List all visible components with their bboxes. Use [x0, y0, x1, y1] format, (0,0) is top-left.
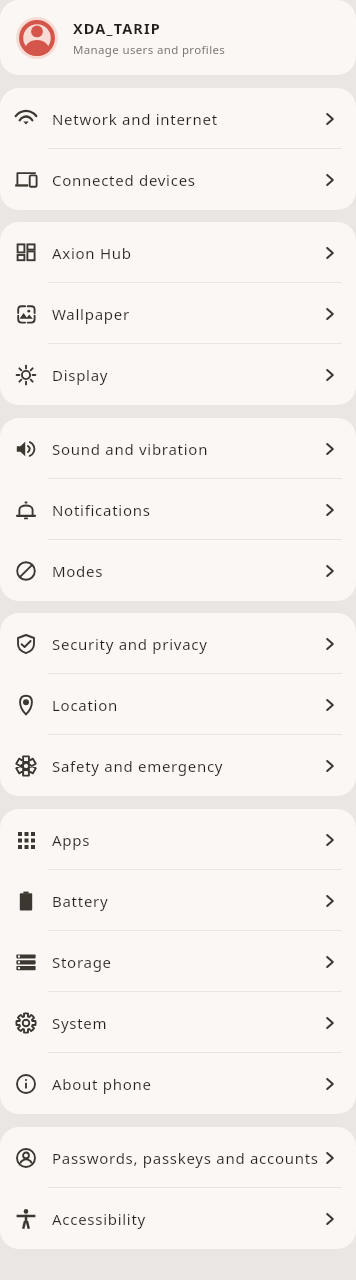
staticText: Location — [52, 695, 322, 715]
staticText: Apps — [52, 830, 322, 850]
staticText: Security and privacy — [52, 634, 322, 654]
button[interactable]: Passwords, passkeys and accounts — [0, 1127, 356, 1188]
button[interactable]: Connected devices — [0, 149, 356, 210]
button[interactable]: Security and privacy — [0, 613, 356, 674]
button[interactable]: Accessibility — [0, 1188, 356, 1249]
button[interactable]: About phone — [0, 1053, 356, 1114]
button[interactable]: System — [0, 992, 356, 1053]
staticText: Manage users and profiles — [73, 42, 226, 58]
staticText: Modes — [52, 561, 322, 581]
button[interactable]: Notifications — [0, 479, 356, 540]
button[interactable]: Display — [0, 344, 356, 405]
staticText: Passwords, passkeys and accounts — [52, 1148, 322, 1168]
staticText: Storage — [52, 952, 322, 972]
staticText: About phone — [52, 1074, 322, 1094]
staticText: Network and internet — [52, 109, 322, 129]
button[interactable]: XDA_TARIP — [0, 0, 356, 75]
staticText: XDA_TARIP — [73, 18, 161, 38]
staticText: Axion Hub — [52, 243, 322, 263]
button[interactable]: Axion Hub — [0, 222, 356, 283]
button[interactable]: Network and internet — [0, 88, 356, 149]
button[interactable]: Safety and emergency — [0, 735, 356, 796]
staticText: Display — [52, 365, 322, 385]
staticText: Notifications — [52, 500, 322, 520]
staticText: Safety and emergency — [52, 756, 322, 776]
staticText: System — [52, 1013, 322, 1033]
button[interactable]: Apps — [0, 809, 356, 870]
button[interactable]: Location — [0, 674, 356, 735]
button[interactable]: Storage — [0, 931, 356, 992]
button[interactable]: Modes — [0, 540, 356, 601]
staticText: Battery — [52, 891, 322, 911]
staticText: Accessibility — [52, 1209, 322, 1229]
button[interactable]: Wallpaper — [0, 283, 356, 344]
staticText: Wallpaper — [52, 304, 322, 324]
button[interactable]: Battery — [0, 870, 356, 931]
staticText: Connected devices — [52, 170, 322, 190]
button[interactable]: Sound and vibration — [0, 418, 356, 479]
staticText: Sound and vibration — [52, 439, 322, 459]
